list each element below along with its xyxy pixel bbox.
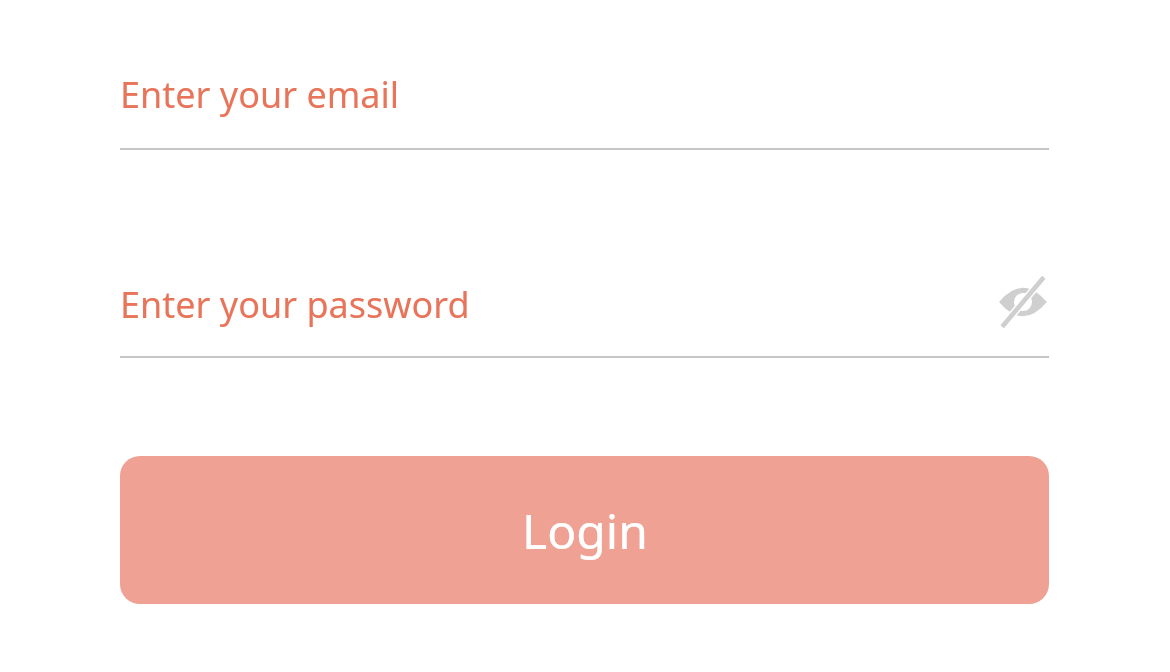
staticText: Enter your email [120, 70, 400, 119]
button[interactable]: Enter your email [120, 70, 1049, 150]
staticText: Login [522, 498, 648, 563]
button[interactable]: Enter your password [120, 280, 1049, 356]
button[interactable]: Login [120, 456, 1049, 604]
button[interactable]: Show password [997, 278, 1049, 326]
staticText: Enter your password [120, 280, 470, 329]
